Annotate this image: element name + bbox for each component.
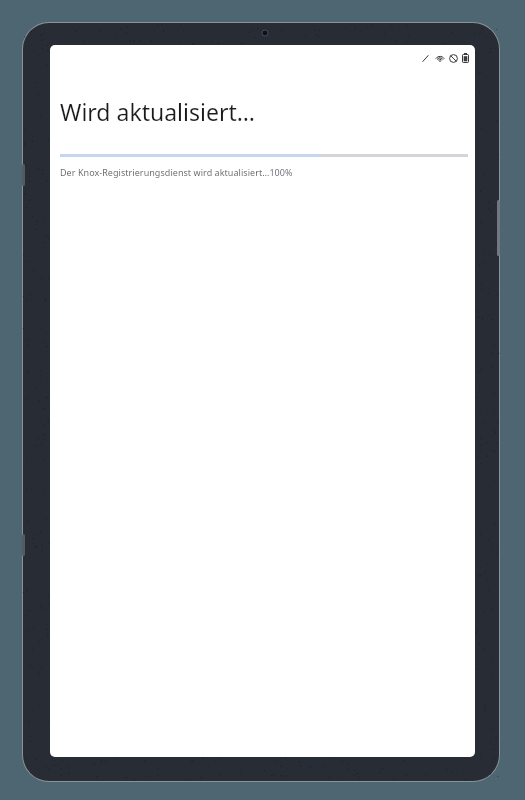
- other: Battery: [462, 53, 469, 63]
- other: Stylus: [421, 54, 430, 63]
- staticText: Der Knox-Registrierungsdienst wird aktua…: [60, 166, 293, 178]
- other: Wi-Fi: [435, 54, 445, 63]
- staticText: Wird aktualisiert…: [60, 96, 255, 127]
- other: Do not disturb: [449, 54, 458, 63]
